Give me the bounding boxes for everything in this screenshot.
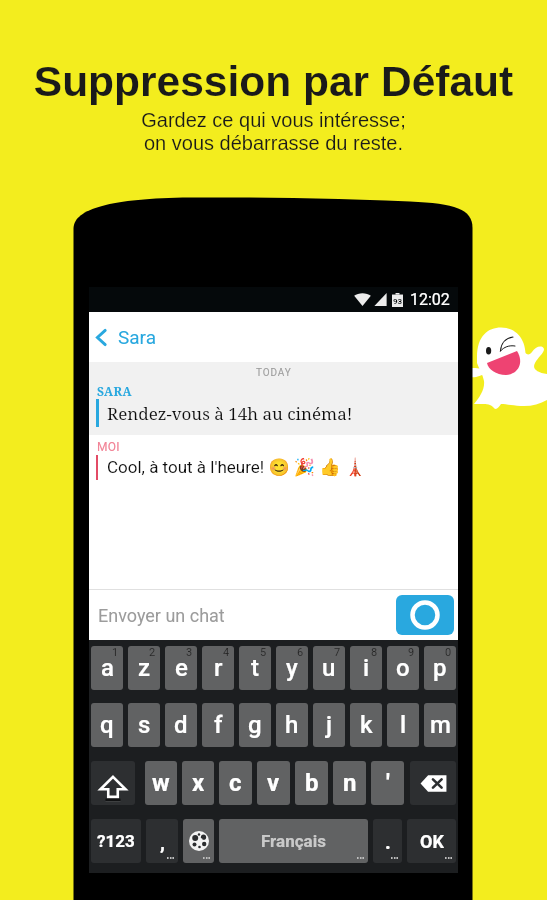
staticText: k xyxy=(360,711,373,739)
staticText: 2 xyxy=(149,646,156,659)
staticText: Rendez-vous à 14h au cinéma! xyxy=(107,402,353,425)
button[interactable]: b xyxy=(295,761,328,805)
staticText: . xyxy=(385,830,391,853)
button[interactable]: l xyxy=(387,703,419,747)
staticText: o xyxy=(396,654,410,682)
staticText: 8 xyxy=(371,646,378,659)
button[interactable]: Français xyxy=(219,819,368,863)
staticText: ?123 xyxy=(97,831,135,851)
staticText: e xyxy=(175,654,188,682)
button[interactable]: o xyxy=(387,646,419,690)
staticText: , xyxy=(160,830,165,853)
other: Back xyxy=(96,329,106,346)
button[interactable]: SARA xyxy=(89,383,458,435)
button[interactable]: p xyxy=(424,646,456,690)
staticText: ' xyxy=(386,769,390,797)
staticText: s xyxy=(138,711,151,739)
staticText: y xyxy=(286,654,298,682)
staticText: 7 xyxy=(334,646,341,659)
staticText: MOI xyxy=(97,440,120,454)
staticText: x xyxy=(192,769,205,797)
button[interactable]: ?123 xyxy=(91,819,141,863)
staticText: 1 xyxy=(112,646,119,659)
button[interactable]: h xyxy=(276,703,308,747)
button[interactable]: x xyxy=(182,761,214,805)
button[interactable]: d xyxy=(165,703,197,747)
button[interactable]: j xyxy=(313,703,345,747)
staticText: 6 xyxy=(297,646,304,659)
staticText: Sara xyxy=(118,326,157,348)
button[interactable]: MOI xyxy=(89,435,458,486)
staticText: g xyxy=(248,711,262,739)
staticText: h xyxy=(285,711,299,739)
staticText: f xyxy=(214,711,223,739)
staticText: j xyxy=(326,711,333,739)
button[interactable]: f xyxy=(202,703,234,747)
button[interactable]: u xyxy=(313,646,345,690)
staticText: u xyxy=(322,654,336,682)
staticText: w xyxy=(152,769,170,797)
button[interactable]: m xyxy=(424,703,456,747)
button[interactable]: c xyxy=(219,761,252,805)
staticText: Français xyxy=(261,831,326,851)
staticText: z xyxy=(138,654,151,682)
staticText: Gardez ce qui vous intéresse; on vous dé… xyxy=(0,109,547,155)
button[interactable]: w xyxy=(145,761,177,805)
staticText: b xyxy=(305,769,319,797)
staticText: 3 xyxy=(186,646,193,659)
staticText: c xyxy=(229,769,242,797)
staticText: l xyxy=(400,711,407,739)
staticText: 93 xyxy=(393,297,403,306)
button[interactable]: Backspace xyxy=(410,761,456,805)
staticText: r xyxy=(214,654,223,682)
button[interactable]: Shift xyxy=(91,761,135,805)
button[interactable]: r xyxy=(202,646,234,690)
button[interactable]: . xyxy=(373,819,402,863)
staticText: TODAY xyxy=(256,367,292,379)
button[interactable]: a xyxy=(91,646,123,690)
staticText: v xyxy=(267,769,280,797)
staticText: n xyxy=(343,769,357,797)
button[interactable]: Envoyer xyxy=(396,595,454,635)
button[interactable]: n xyxy=(333,761,366,805)
button[interactable]: , xyxy=(146,819,178,863)
staticText: OK xyxy=(420,831,444,852)
staticText: d xyxy=(174,711,188,739)
staticText: q xyxy=(100,711,114,739)
staticText: m xyxy=(430,711,451,739)
staticText: 5 xyxy=(260,646,267,659)
staticText: 12:02 xyxy=(410,290,450,309)
staticText: t xyxy=(251,654,259,682)
button[interactable]: v xyxy=(257,761,290,805)
button[interactable]: q xyxy=(91,703,123,747)
button[interactable]: e xyxy=(165,646,197,690)
button[interactable]: z xyxy=(128,646,160,690)
staticText: p xyxy=(433,654,447,682)
button[interactable]: ' xyxy=(371,761,404,805)
staticText: Suppression par Défaut xyxy=(0,58,547,105)
button[interactable]: Envoyer un chat xyxy=(98,605,396,626)
button[interactable]: t xyxy=(239,646,271,690)
button[interactable]: g xyxy=(239,703,271,747)
button[interactable]: Back xyxy=(89,312,458,362)
staticText: Cool, à tout à l'heure! 😊 🎉 👍 🗼 xyxy=(107,457,366,477)
button[interactable]: s xyxy=(128,703,160,747)
staticText: 0 xyxy=(445,646,452,659)
button[interactable]: k xyxy=(350,703,382,747)
button[interactable]: y xyxy=(276,646,308,690)
staticText: i xyxy=(363,654,370,682)
button[interactable]: OK xyxy=(407,819,456,863)
staticText: SARA xyxy=(97,383,132,399)
button[interactable]: Change language xyxy=(183,819,214,863)
staticText: a xyxy=(101,654,114,682)
staticText: 9 xyxy=(408,646,415,659)
button[interactable]: i xyxy=(350,646,382,690)
staticText: 4 xyxy=(223,646,230,659)
